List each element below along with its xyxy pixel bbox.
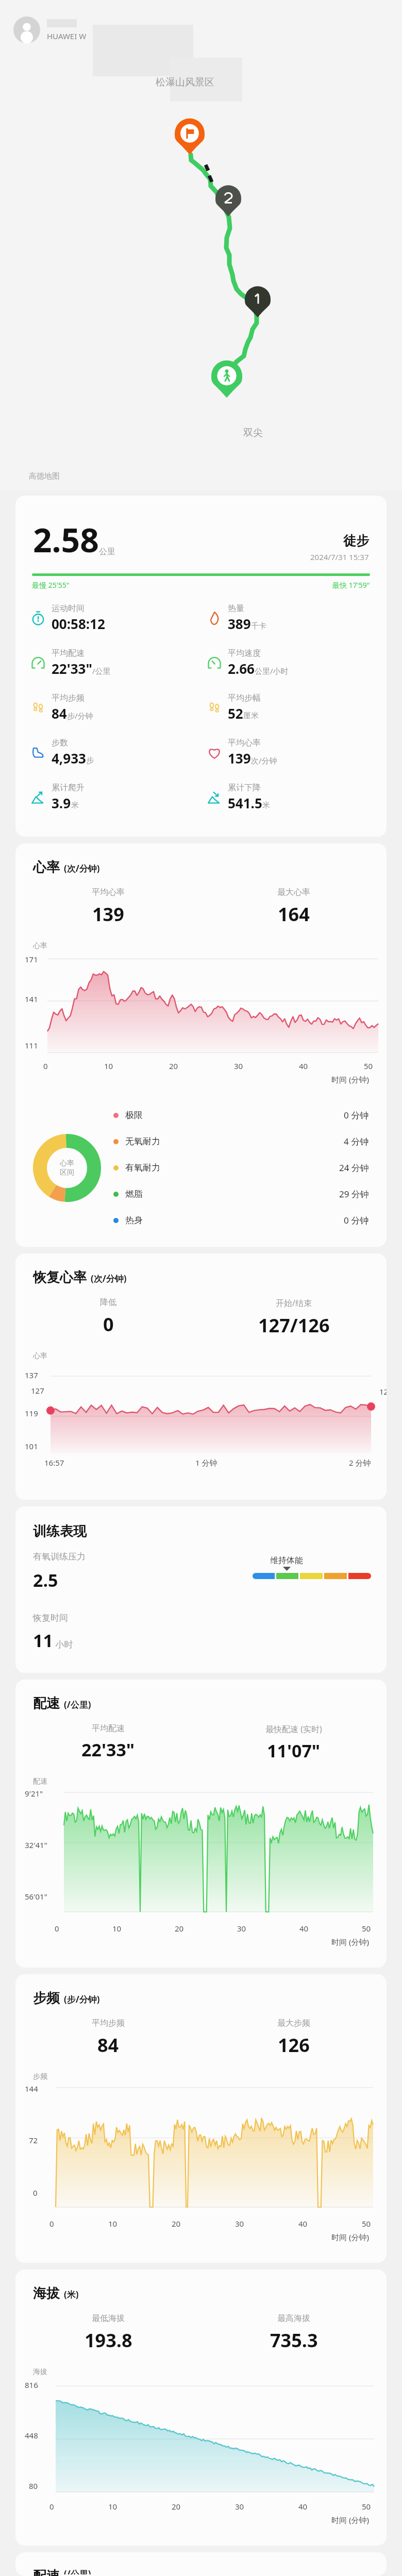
staticText: 心率 bbox=[60, 1159, 74, 1168]
button[interactable]: 极限 bbox=[113, 1109, 369, 1121]
staticText: 平均步频 bbox=[52, 693, 85, 703]
staticText: 高德地图 bbox=[29, 471, 60, 481]
staticText: 22'33" bbox=[52, 659, 92, 677]
staticText: 累计爬升 bbox=[52, 783, 85, 793]
staticText: 平均步频 bbox=[92, 2018, 125, 2028]
staticText: 双尖 bbox=[243, 427, 263, 439]
button[interactable]: 累计下降 bbox=[206, 783, 382, 812]
other: Profile bbox=[13, 16, 40, 43]
staticText: 米 bbox=[262, 801, 270, 810]
staticText: 平均步幅 bbox=[228, 693, 261, 703]
staticText: 144 bbox=[25, 2083, 38, 2094]
button[interactable]: 无氧耐力 bbox=[113, 1136, 369, 1147]
staticText: 时间 (分钟) bbox=[331, 1937, 369, 1947]
staticText: 4 分钟 bbox=[344, 1136, 369, 1147]
staticText: 松瀑山风景区 bbox=[156, 76, 214, 89]
staticText: 1 分钟 bbox=[195, 1458, 217, 1468]
staticText: 最低海拔 bbox=[92, 2313, 125, 2324]
staticText: 最大步频 bbox=[277, 2018, 310, 2028]
staticText: (步/分钟) bbox=[64, 1993, 100, 2005]
staticText: 步数 bbox=[52, 738, 68, 748]
button[interactable]: 运动时间 bbox=[30, 603, 206, 633]
staticText: 00:58:12 bbox=[52, 615, 105, 633]
staticText: 时间 (分钟) bbox=[331, 1074, 369, 1084]
staticText: 139 bbox=[92, 902, 124, 927]
staticText: 448 bbox=[25, 2430, 38, 2441]
staticText: 40 bbox=[299, 1061, 308, 1071]
staticText: 米 bbox=[71, 801, 79, 810]
staticText: 40 bbox=[298, 2218, 308, 2229]
staticText: 30 bbox=[235, 2501, 244, 2512]
staticText: 0 bbox=[49, 2501, 54, 2512]
staticText: 配速 bbox=[33, 1695, 60, 1712]
staticText: 84 bbox=[97, 2032, 119, 2058]
staticText: 20 bbox=[169, 1061, 178, 1071]
button[interactable]: Profile bbox=[13, 16, 87, 43]
staticText: 3.9 bbox=[52, 794, 71, 812]
staticText: 维持体能 bbox=[270, 1555, 303, 1566]
staticText: (/公里) bbox=[64, 1699, 91, 1710]
staticText: 40 bbox=[299, 1923, 309, 1934]
staticText: 小时 bbox=[53, 1638, 73, 1650]
staticText: 11 bbox=[33, 1629, 53, 1652]
button[interactable]: 平均配速 bbox=[30, 648, 206, 677]
staticText: 2.58 bbox=[33, 517, 99, 562]
staticText: 20 bbox=[172, 2501, 181, 2512]
staticText: 171 bbox=[25, 954, 38, 964]
staticText: 燃脂 bbox=[125, 1189, 143, 1199]
staticText: 816 bbox=[25, 2380, 38, 2390]
staticText: 热量 bbox=[228, 603, 244, 614]
staticText: 80 bbox=[29, 2481, 38, 2491]
button[interactable]: 热量 bbox=[206, 603, 382, 633]
staticText: 127/126 bbox=[258, 1313, 330, 1338]
staticText: 平均配速 bbox=[52, 648, 85, 658]
staticText: 海拔 bbox=[33, 2367, 47, 2377]
staticText: 126 bbox=[278, 2032, 310, 2058]
button[interactable]: 平均步幅 bbox=[206, 693, 382, 722]
staticText: 119 bbox=[25, 1408, 38, 1418]
button[interactable]: 平均心率 bbox=[206, 738, 382, 767]
staticText: (/公里) bbox=[64, 2568, 91, 2574]
staticText: 心率 bbox=[33, 1351, 47, 1361]
staticText: HUAWEI W bbox=[47, 31, 87, 41]
button[interactable]: 累计爬升 bbox=[30, 783, 206, 812]
staticText: 32'41" bbox=[25, 1840, 47, 1850]
staticText: 2.66 bbox=[228, 659, 255, 677]
staticText: 最快 17'59" bbox=[332, 580, 370, 590]
button[interactable]: 平均步频 bbox=[30, 693, 206, 722]
staticText: (米) bbox=[64, 2289, 79, 2300]
staticText: 最大心率 bbox=[277, 887, 310, 897]
staticText: 101 bbox=[25, 1441, 38, 1451]
staticText: 极限 bbox=[125, 1110, 143, 1121]
staticText: 最快配速 (实时) bbox=[265, 1723, 322, 1735]
staticText: 平均速度 bbox=[228, 648, 261, 658]
staticText: 50 bbox=[362, 2218, 371, 2229]
staticText: 有氧训练压力 bbox=[33, 1551, 86, 1562]
staticText: 平均心率 bbox=[92, 887, 125, 897]
staticText: 56'01" bbox=[25, 1891, 47, 1902]
staticText: 50 bbox=[362, 2501, 371, 2512]
staticText: 累计下降 bbox=[228, 783, 261, 793]
button[interactable]: 燃脂 bbox=[113, 1188, 369, 1200]
staticText: 24 分钟 bbox=[339, 1162, 369, 1174]
staticText: (次/分钟) bbox=[64, 862, 100, 874]
button[interactable]: 热身 bbox=[113, 1214, 369, 1226]
staticText: 29 分钟 bbox=[339, 1188, 369, 1200]
staticText: 海拔 bbox=[33, 2285, 60, 2302]
staticText: 步/分钟 bbox=[67, 710, 93, 721]
staticText: 有氧耐力 bbox=[125, 1162, 160, 1173]
staticText: 30 bbox=[234, 1061, 243, 1071]
staticText: 训练表现 bbox=[33, 1523, 87, 1540]
staticText: 0 分钟 bbox=[344, 1214, 369, 1226]
staticText: 运动时间 bbox=[52, 603, 85, 614]
staticText: 公里 bbox=[99, 547, 115, 557]
staticText: 平均配速 bbox=[92, 1723, 125, 1734]
button[interactable]: 有氧耐力 bbox=[113, 1162, 369, 1174]
staticText: 141 bbox=[25, 994, 38, 1004]
staticText: 50 bbox=[364, 1061, 373, 1071]
button[interactable]: 平均速度 bbox=[206, 648, 382, 677]
staticText: 恢复时间 bbox=[33, 1613, 68, 1623]
button[interactable]: 步数 bbox=[30, 738, 206, 767]
staticText: 千卡 bbox=[251, 621, 266, 631]
staticText: 热身 bbox=[125, 1215, 143, 1226]
